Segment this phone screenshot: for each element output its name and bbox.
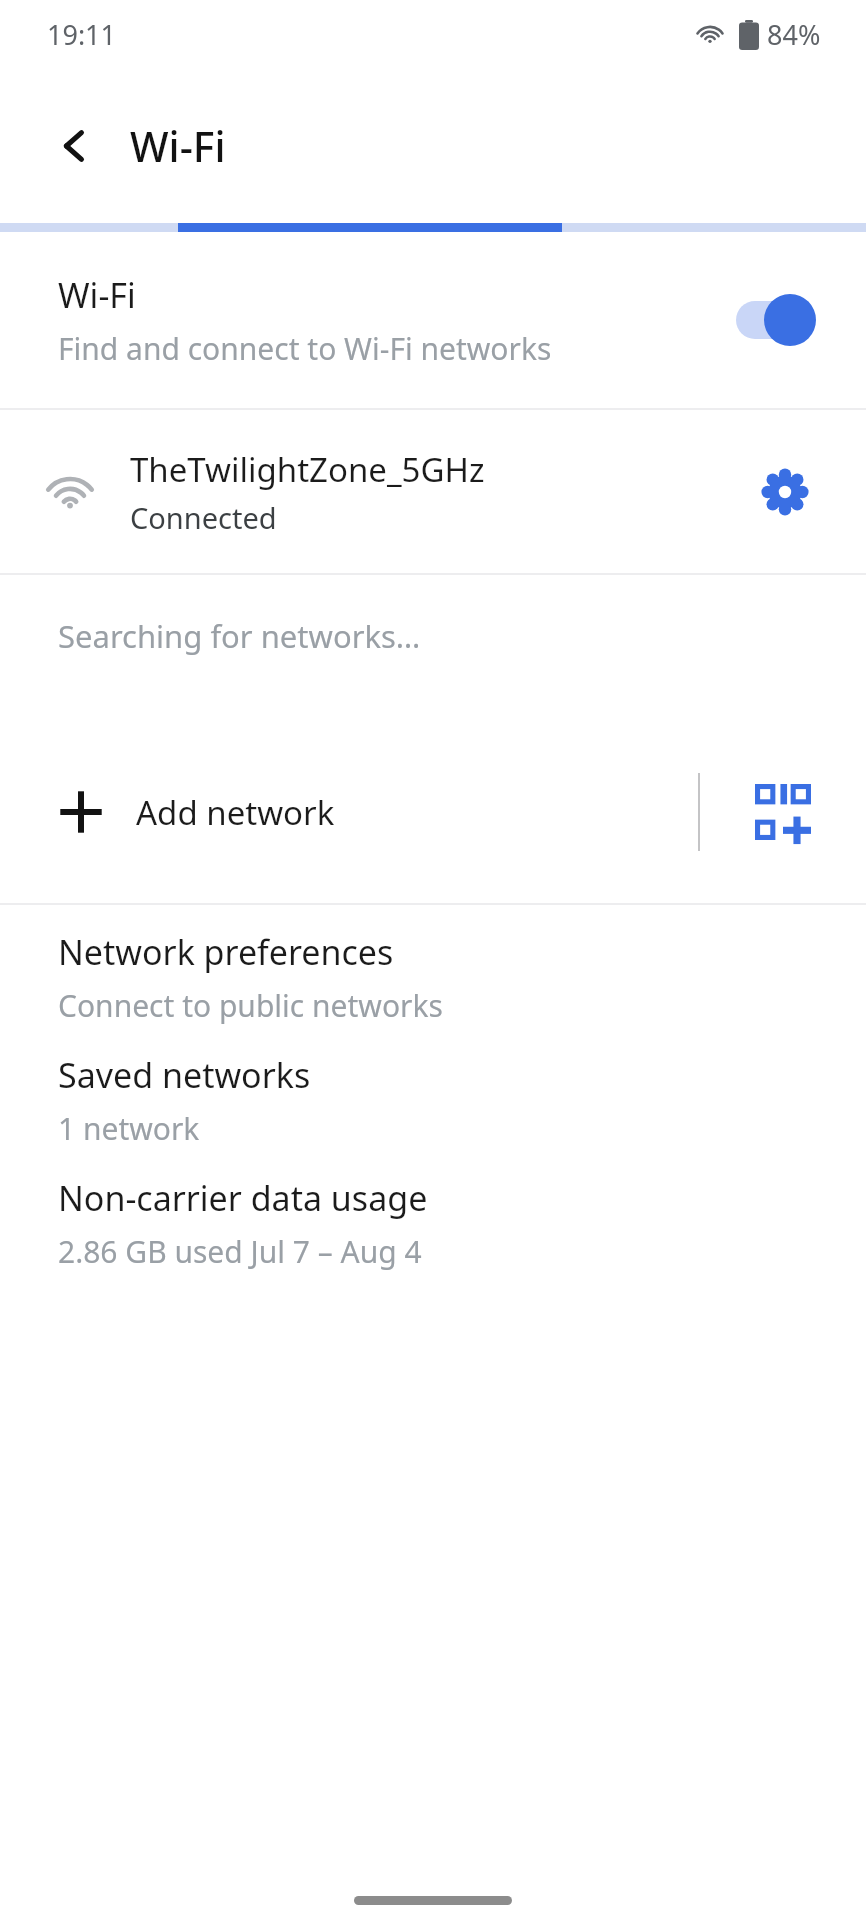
button[interactable]: Scan QR code: [700, 721, 866, 903]
staticText: Searching for networks…: [58, 615, 421, 657]
staticText: 1 network: [58, 1108, 200, 1149]
staticText: TheTwilightZone_5GHz: [130, 447, 485, 492]
staticText: Wi-Fi: [130, 118, 226, 174]
button[interactable]: Add network: [0, 721, 698, 903]
staticText: Non-carrier data usage: [58, 1175, 428, 1221]
staticText: Add network: [136, 790, 335, 835]
button[interactable]: Non-carrier data usage: [0, 1175, 866, 1272]
staticText: 2.86 GB used Jul 7 – Aug 4: [58, 1231, 422, 1272]
staticText: 19:11: [47, 16, 117, 53]
staticText: 84%: [767, 16, 821, 53]
staticText: Connect to public networks: [58, 985, 443, 1026]
button[interactable]: TheTwilightZone_5GHz: [0, 410, 866, 573]
button[interactable]: Saved networks: [0, 1052, 866, 1149]
staticText: Network preferences: [58, 929, 394, 975]
staticText: Saved networks: [58, 1052, 311, 1098]
staticText: Connected: [130, 498, 277, 537]
button[interactable]: Wi-Fi toggle: [732, 289, 820, 351]
button[interactable]: Network preferences: [0, 929, 866, 1026]
button[interactable]: Wi-Fi: [0, 232, 866, 408]
button[interactable]: Back: [44, 115, 106, 177]
button[interactable]: Network settings: [748, 455, 822, 529]
staticText: Wi-Fi: [58, 272, 136, 318]
staticText: Find and connect to Wi-Fi networks: [58, 328, 552, 369]
